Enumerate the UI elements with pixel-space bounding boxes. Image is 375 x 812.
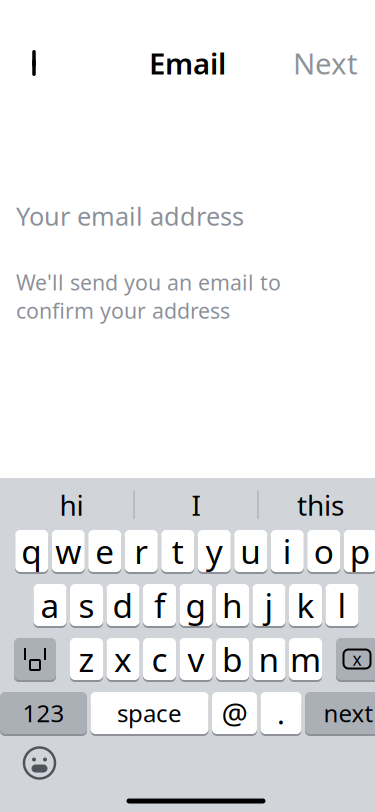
button[interactable]: q [15, 530, 48, 574]
staticText: h [222, 583, 243, 627]
staticText: x [114, 637, 132, 681]
button[interactable]: @ [212, 692, 257, 736]
staticText: o [314, 529, 334, 573]
button[interactable]: h [216, 584, 249, 628]
button[interactable]: k [289, 584, 322, 628]
staticText: z [78, 637, 94, 681]
staticText: Your email address [16, 199, 244, 233]
staticText: Next [293, 43, 358, 82]
button[interactable]: Back [13, 41, 55, 85]
staticText: q [21, 529, 42, 573]
staticText: y [206, 529, 223, 573]
button[interactable]: x [106, 638, 139, 682]
button[interactable]: j [252, 584, 285, 628]
staticText: g [185, 583, 206, 627]
staticText: l [337, 583, 346, 627]
staticText: e [95, 529, 114, 573]
staticText: i [283, 529, 292, 573]
button[interactable]: u [234, 530, 267, 574]
button[interactable]: m [289, 638, 322, 682]
staticText: this [297, 486, 344, 524]
button[interactable]: v [179, 638, 212, 682]
button[interactable]: c [143, 638, 176, 682]
staticText: 123 [22, 697, 64, 729]
staticText: f [154, 583, 165, 627]
staticText: @ [221, 693, 247, 732]
button[interactable]: z [70, 638, 103, 682]
staticText: x [352, 647, 361, 670]
staticText: We'll send you an email to confirm your … [16, 268, 281, 325]
staticText: p [350, 529, 371, 573]
button[interactable]: Emoji keyboard [16, 740, 62, 786]
staticText: d [112, 583, 133, 627]
button[interactable]: Your email address [0, 200, 375, 232]
button[interactable]: g [179, 584, 212, 628]
staticText: hi [59, 486, 83, 524]
button[interactable]: Shift [14, 638, 56, 682]
button[interactable]: Next [289, 41, 362, 85]
staticText: b [222, 637, 243, 681]
staticText: space [117, 697, 182, 729]
button[interactable]: s [70, 584, 103, 628]
button[interactable]: p [344, 530, 375, 574]
staticText: c [151, 637, 167, 681]
staticText: a [40, 583, 59, 627]
button[interactable]: o [307, 530, 340, 574]
button[interactable]: next [305, 692, 375, 736]
button[interactable]: 123 [0, 692, 87, 736]
button[interactable]: r [125, 530, 158, 574]
button[interactable]: y [198, 530, 231, 574]
button[interactable]: i [271, 530, 304, 574]
staticText: next [323, 697, 373, 729]
button[interactable]: t [161, 530, 194, 574]
staticText: r [134, 529, 148, 573]
button[interactable]: w [52, 530, 85, 574]
button[interactable]: Delete [336, 638, 375, 682]
staticText: t [172, 529, 184, 573]
staticText: m [290, 637, 321, 681]
button[interactable]: hi [9, 482, 133, 528]
staticText: s [78, 583, 94, 627]
button[interactable]: I [134, 482, 257, 528]
staticText: I [191, 486, 200, 524]
staticText: j [264, 583, 273, 627]
button[interactable]: f [143, 584, 176, 628]
staticText: w [55, 529, 81, 573]
staticText: . [277, 693, 285, 732]
button[interactable]: b [216, 638, 249, 682]
button[interactable]: n [252, 638, 285, 682]
staticText: n [258, 637, 279, 681]
staticText: k [296, 583, 314, 627]
button[interactable]: e [88, 530, 121, 574]
staticText: u [240, 529, 261, 573]
staticText: Email [149, 43, 226, 82]
button[interactable]: . [260, 692, 301, 736]
button[interactable]: a [33, 584, 66, 628]
button[interactable]: space [90, 692, 208, 736]
button[interactable]: l [325, 584, 358, 628]
staticText: v [187, 637, 204, 681]
button[interactable]: this [258, 482, 375, 528]
button[interactable]: d [106, 584, 139, 628]
